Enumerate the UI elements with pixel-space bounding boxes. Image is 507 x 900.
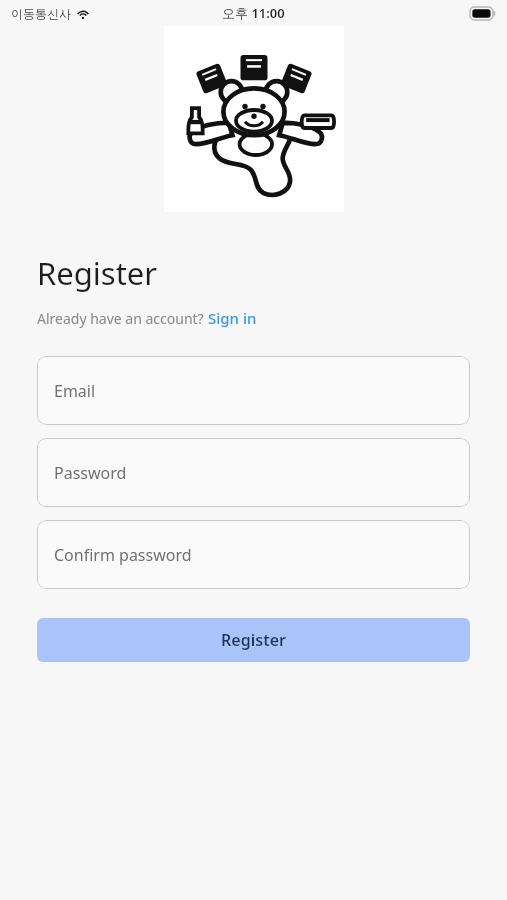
button[interactable]: Confirm password (37, 520, 470, 589)
staticText: Sign in (208, 308, 257, 328)
staticText: Confirm password (54, 544, 192, 566)
button[interactable]: Register (37, 618, 470, 662)
button[interactable]: Sign in (208, 308, 257, 328)
staticText: Register (221, 629, 286, 651)
staticText: Register (37, 252, 158, 294)
staticText: 오후 11:00 (222, 4, 285, 22)
button[interactable]: Email (37, 356, 470, 425)
button[interactable]: Password (37, 438, 470, 507)
staticText: Password (54, 462, 127, 484)
staticText: 이동통신사 (11, 6, 71, 21)
staticText: Already have an account? (37, 309, 208, 328)
staticText: Email (54, 380, 96, 402)
